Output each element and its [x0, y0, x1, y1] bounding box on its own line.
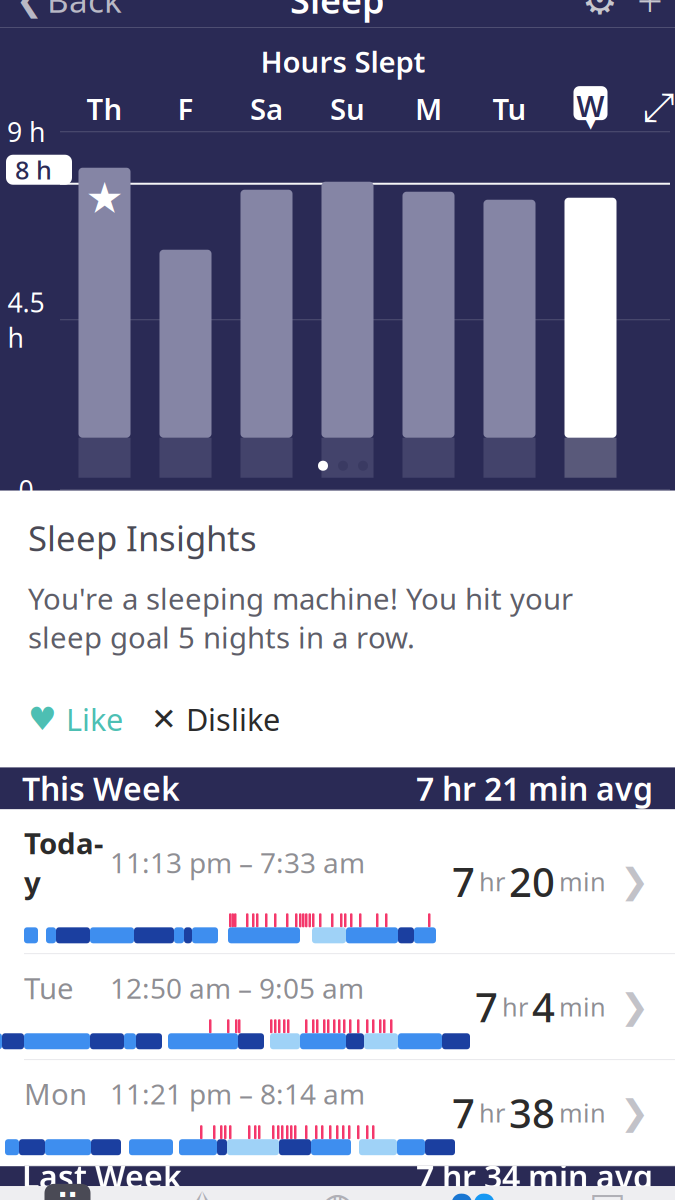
staticText: 20 — [509, 855, 555, 908]
staticText: 0 — [18, 472, 33, 507]
staticText: ✕ — [151, 702, 177, 736]
staticText: Tue — [24, 968, 74, 1007]
staticText: 4 — [532, 980, 555, 1033]
staticText: ♥ — [28, 701, 57, 737]
staticText: Mon — [24, 1074, 87, 1113]
staticText: Sa — [250, 89, 283, 128]
staticText: ▤ — [588, 1184, 626, 1200]
staticText: W — [576, 86, 604, 125]
staticText: ⣿ — [55, 1187, 80, 1200]
staticText: 7 hr 21 min avg — [416, 767, 653, 810]
staticText: ▼ — [584, 113, 596, 131]
button[interactable]: ♥ — [28, 693, 123, 745]
staticText: 4.5 h — [7, 284, 44, 355]
button[interactable]: Settings — [575, 0, 625, 28]
button[interactable]: Mon — [0, 1060, 675, 1166]
staticText: hr — [479, 1096, 505, 1129]
staticText: ⚙ — [582, 0, 618, 22]
staticText: min — [559, 1096, 606, 1129]
staticText: Last Week — [22, 1155, 182, 1197]
button[interactable]: ✩ — [135, 1186, 270, 1200]
staticText: 7 — [475, 980, 498, 1033]
staticText: Tu — [492, 89, 526, 128]
staticText: This Week — [22, 767, 180, 810]
staticText: Sleep Insights — [28, 515, 257, 561]
staticText: 9 h — [7, 114, 45, 149]
button[interactable]: Expand chart — [631, 87, 675, 131]
staticText: Like — [66, 699, 123, 739]
button[interactable]: Tue — [0, 954, 675, 1060]
staticText: 11:21 pm – 8:14 am — [110, 1075, 365, 1112]
button[interactable]: ▤ — [540, 1186, 675, 1200]
staticText: hr — [502, 990, 528, 1024]
staticText: M — [415, 89, 442, 128]
staticText: Th — [86, 89, 122, 128]
staticText: 👥 — [447, 1184, 497, 1200]
staticText: You're a sleeping machine! You hit your … — [28, 579, 573, 657]
button[interactable]: ✕ — [151, 693, 280, 745]
button[interactable]: ⣿ — [0, 1186, 135, 1200]
staticText: ❯ — [620, 987, 649, 1026]
staticText: Su — [330, 89, 365, 128]
staticText: ⤢ — [642, 89, 674, 128]
button[interactable]: ◍ — [270, 1186, 405, 1200]
staticText: min — [559, 864, 606, 898]
staticText: 12:50 am – 9:05 am — [110, 969, 364, 1006]
staticText: Back — [47, 0, 122, 22]
staticText: ❮ — [16, 0, 43, 18]
staticText: ★ — [85, 174, 123, 222]
staticText: min — [559, 990, 606, 1024]
staticText: Today — [24, 823, 103, 901]
staticText: + — [637, 0, 663, 30]
staticText: 7 — [452, 855, 475, 908]
staticText: Hours Slept — [260, 42, 425, 81]
staticText: hr — [479, 864, 505, 898]
staticText: ❯ — [620, 862, 649, 901]
button[interactable]: 👥 — [405, 1186, 540, 1200]
staticText: 38 — [509, 1086, 555, 1139]
staticText: F — [177, 89, 193, 128]
staticText: ◍ — [320, 1184, 355, 1200]
staticText: 11:13 pm – 7:33 am — [110, 844, 365, 881]
staticText: 8 h — [15, 153, 52, 186]
staticText: 7 hr 34 min avg — [416, 1155, 653, 1197]
button[interactable]: Add — [625, 0, 675, 28]
staticText: 7 — [452, 1086, 475, 1139]
staticText: Sleep — [290, 0, 385, 24]
staticText: ✩ — [185, 1184, 219, 1200]
button[interactable]: ❮ — [0, 0, 138, 28]
staticText: ❯ — [620, 1093, 649, 1132]
button[interactable]: Today — [0, 809, 675, 954]
staticText: Dislike — [186, 699, 280, 739]
